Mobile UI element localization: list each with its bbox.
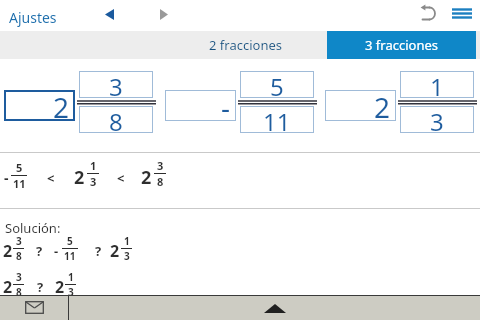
staticText: 3 fracciones (365, 36, 438, 54)
staticText: 5 (16, 160, 23, 175)
button[interactable]: Ajustes (4, 3, 62, 32)
button[interactable]: 1 (400, 71, 474, 98)
button[interactable]: 5 (240, 71, 314, 98)
staticText: 2 (110, 240, 120, 262)
staticText: - (221, 88, 231, 119)
staticText: 3 (109, 70, 123, 97)
staticText: 11 (263, 105, 291, 132)
button[interactable] (69, 296, 480, 320)
button[interactable]: 2 (325, 90, 396, 121)
staticText: 3 (68, 285, 74, 299)
staticText: 8 (16, 285, 22, 299)
staticText: 3 (430, 105, 444, 132)
button[interactable]: 3 (400, 106, 474, 133)
staticText: 1 (124, 234, 130, 248)
button[interactable] (98, 4, 122, 26)
staticText: 1 (90, 158, 97, 173)
staticText: 1 (430, 70, 444, 97)
staticText: 8 (109, 105, 123, 132)
staticText: ? (37, 278, 44, 296)
staticText: Solución: (5, 219, 61, 237)
staticText: - (4, 168, 9, 187)
staticText: 8 (157, 174, 164, 189)
button[interactable]: 2 fracciones (167, 31, 323, 59)
staticText: 2 (53, 88, 70, 119)
staticText: 5 (270, 70, 284, 97)
staticText: 2 (3, 276, 13, 298)
staticText: ? (36, 242, 43, 260)
staticText: 2 (55, 276, 65, 298)
staticText: 8 (16, 249, 22, 263)
button[interactable] (0, 296, 68, 320)
button[interactable] (416, 1, 442, 27)
staticText: 3 (124, 249, 130, 263)
staticText: - (54, 242, 59, 260)
button[interactable]: 11 (240, 106, 314, 133)
button[interactable] (152, 4, 176, 26)
staticText: < (47, 169, 55, 187)
staticText: < (117, 169, 125, 187)
staticText: 2 fracciones (209, 36, 282, 54)
button[interactable]: 8 (79, 106, 153, 133)
button[interactable]: 3 fracciones (327, 31, 476, 59)
button[interactable]: 2 (4, 90, 75, 121)
staticText: 5 (67, 234, 73, 248)
staticText: ? (95, 242, 102, 260)
staticText: 11 (64, 249, 76, 263)
staticText: 3 (157, 158, 164, 173)
staticText: 11 (13, 176, 26, 191)
staticText: Ajustes (9, 8, 57, 27)
staticText: 2 (3, 240, 13, 262)
button[interactable] (448, 2, 476, 26)
staticText: 2 (141, 165, 152, 190)
staticText: 2 (374, 88, 391, 119)
staticText: 3 (16, 234, 22, 248)
staticText: 2 (74, 165, 85, 190)
staticText: 3 (16, 270, 22, 284)
staticText: 3 (90, 174, 97, 189)
button[interactable]: 3 (79, 71, 153, 98)
button[interactable]: - (165, 90, 236, 121)
staticText: 1 (68, 270, 74, 284)
